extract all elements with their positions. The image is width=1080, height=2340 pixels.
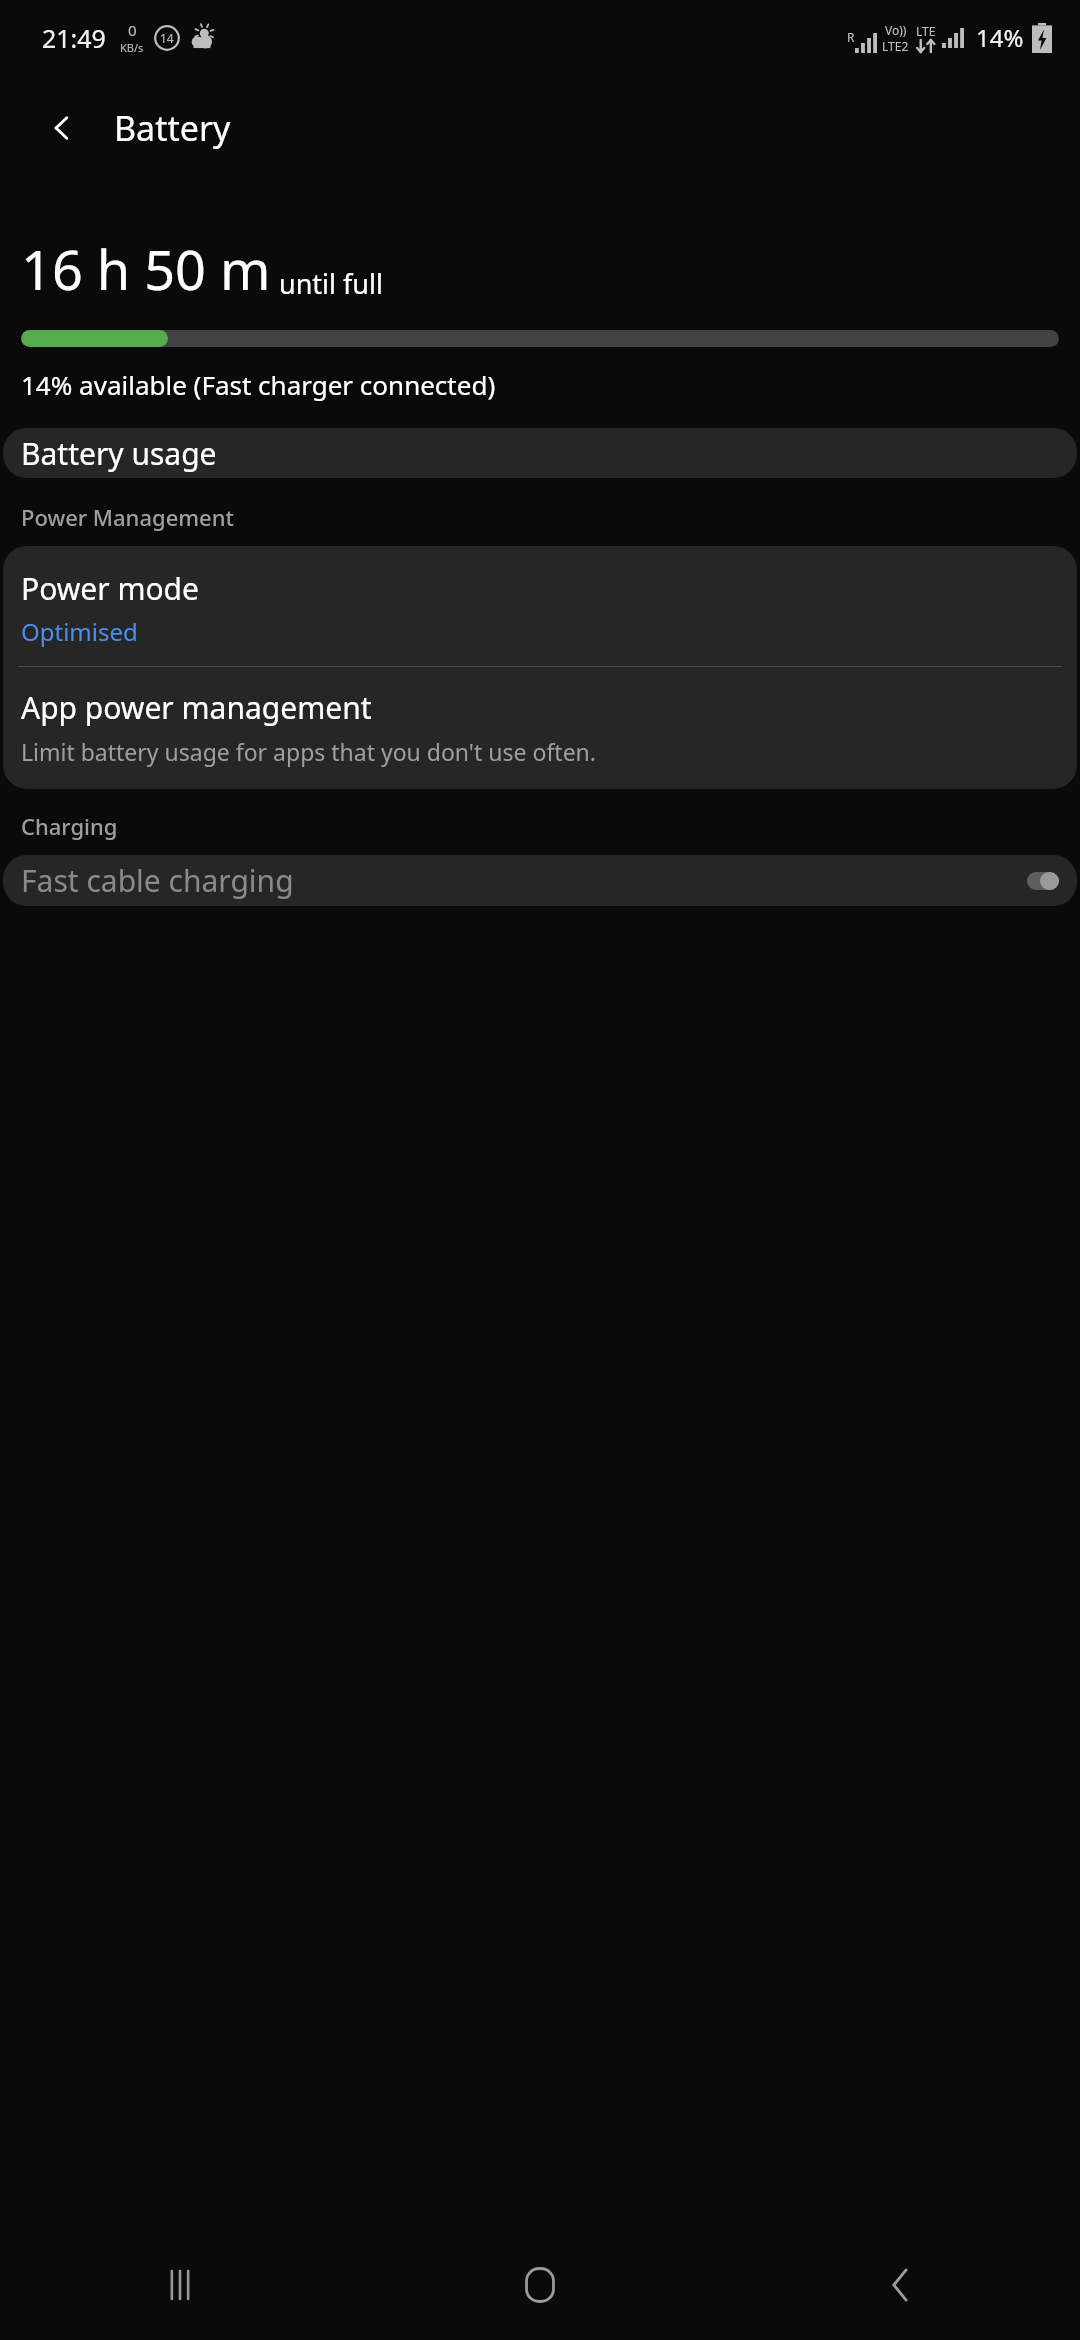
button[interactable]: Home — [360, 2230, 720, 2340]
button[interactable]: Power mode — [3, 546, 1077, 666]
staticText: LTE2 — [882, 38, 909, 54]
staticText: Vo)) — [885, 22, 907, 38]
staticText: 14% — [976, 21, 1024, 54]
button[interactable]: Battery usage — [3, 428, 1077, 478]
staticText: R — [847, 29, 855, 45]
staticText: Power mode — [21, 568, 199, 609]
button[interactable]: App power management — [3, 667, 1077, 789]
staticText: Charging — [21, 811, 118, 841]
staticText: Limit battery usage for apps that you do… — [21, 736, 596, 767]
button[interactable]: Recents — [0, 2230, 360, 2340]
staticText: until full — [279, 265, 383, 302]
staticText: Power Management — [21, 502, 234, 532]
staticText: Fast cable charging — [21, 860, 1027, 901]
staticText: 0 — [128, 20, 137, 40]
staticText: 14 — [160, 30, 174, 46]
staticText: KB/s — [120, 40, 144, 55]
staticText: Optimised — [21, 615, 138, 648]
staticText: 16 h 50 m — [21, 232, 271, 306]
staticText: App power management — [21, 687, 372, 728]
staticText: Battery — [114, 105, 231, 151]
staticText: Battery usage — [21, 433, 217, 474]
staticText: 14% available (Fast charger connected) — [21, 367, 496, 402]
staticText: LTE — [916, 23, 936, 39]
button[interactable]: Back — [30, 96, 94, 160]
staticText: 21:49 — [42, 21, 106, 55]
button[interactable]: Back — [720, 2230, 1080, 2340]
button[interactable]: Fast cable charging — [3, 855, 1077, 906]
